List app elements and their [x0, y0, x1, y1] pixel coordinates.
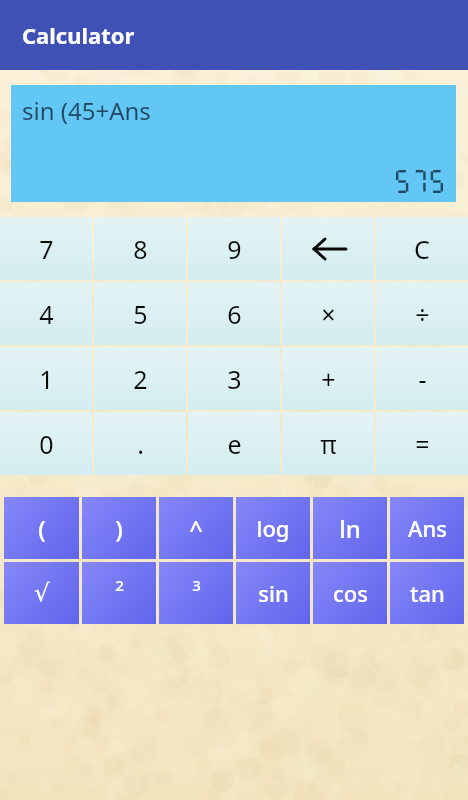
staticText: 9: [227, 232, 242, 266]
button[interactable]: cos: [313, 562, 387, 624]
staticText: 3: [227, 362, 242, 396]
staticText: 2: [115, 575, 124, 595]
staticText: 2: [133, 362, 148, 396]
button[interactable]: +: [282, 347, 374, 410]
button[interactable]: log: [236, 497, 310, 559]
staticText: log: [256, 513, 290, 543]
button[interactable]: Backspace: [282, 217, 374, 280]
button[interactable]: tan: [390, 562, 464, 624]
button[interactable]: √: [4, 562, 79, 624]
staticText: .: [137, 427, 144, 461]
button[interactable]: 0: [0, 412, 92, 475]
button[interactable]: 5: [94, 282, 186, 345]
staticText: -: [418, 362, 427, 396]
staticText: sin (45+Ans: [22, 94, 151, 127]
button[interactable]: 8: [94, 217, 186, 280]
staticText: ln: [339, 512, 361, 545]
button[interactable]: π: [282, 412, 374, 475]
button[interactable]: 4: [0, 282, 92, 345]
staticText: ^: [189, 512, 203, 545]
staticText: =: [415, 427, 430, 461]
staticText: (: [38, 512, 46, 545]
staticText: +: [321, 362, 336, 396]
button[interactable]: e: [188, 412, 280, 475]
staticText: 4: [39, 297, 54, 331]
staticText: ×: [321, 297, 336, 331]
button[interactable]: ÷: [376, 282, 468, 345]
staticText: π: [320, 427, 337, 461]
button[interactable]: 3: [188, 347, 280, 410]
button[interactable]: 6: [188, 282, 280, 345]
button[interactable]: 2: [94, 347, 186, 410]
staticText: 5: [133, 297, 148, 331]
button[interactable]: 7: [0, 217, 92, 280]
staticText: e: [227, 427, 242, 461]
staticText: 6: [227, 297, 242, 331]
button[interactable]: 3: [159, 562, 233, 624]
button[interactable]: 1: [0, 347, 92, 410]
button[interactable]: 9: [188, 217, 280, 280]
staticText: sin: [258, 578, 289, 608]
button[interactable]: ^: [159, 497, 233, 559]
staticText: ÷: [415, 297, 430, 331]
button[interactable]: =: [376, 412, 468, 475]
button[interactable]: 2: [82, 562, 156, 624]
staticText: √: [34, 579, 50, 607]
staticText: 3: [192, 575, 201, 595]
staticText: Ans: [408, 513, 447, 543]
button[interactable]: (: [4, 497, 79, 559]
button[interactable]: ×: [282, 282, 374, 345]
staticText: tan: [410, 578, 445, 608]
button[interactable]: sin (45+Ans: [11, 85, 456, 202]
staticText: Calculator: [22, 20, 135, 50]
staticText: C: [414, 232, 430, 266]
staticText: ): [115, 512, 123, 545]
staticText: cos: [333, 578, 368, 608]
button[interactable]: sin: [236, 562, 310, 624]
button[interactable]: .: [94, 412, 186, 475]
button[interactable]: -: [376, 347, 468, 410]
button[interactable]: ln: [313, 497, 387, 559]
staticText: 8: [133, 232, 148, 266]
button[interactable]: ): [82, 497, 156, 559]
staticText: 0: [39, 427, 54, 461]
button[interactable]: Ans: [390, 497, 464, 559]
button[interactable]: C: [376, 217, 468, 280]
staticText: 1: [39, 362, 54, 396]
staticText: 7: [39, 232, 54, 266]
